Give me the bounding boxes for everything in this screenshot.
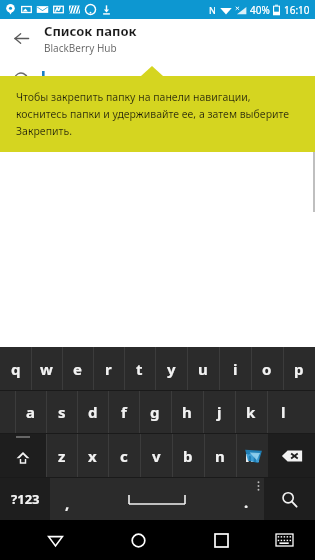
button[interactable]: c	[108, 434, 140, 477]
staticText: N	[209, 4, 216, 16]
button[interactable]: b	[172, 434, 204, 477]
button[interactable]: ,	[50, 478, 85, 520]
button[interactable]: m	[236, 434, 268, 477]
staticText: ?123	[11, 490, 40, 508]
staticText: q	[11, 359, 21, 379]
button[interactable]: f	[108, 391, 139, 433]
button[interactable]: w	[31, 347, 62, 390]
button[interactable]: p	[283, 347, 315, 390]
button[interactable]: k	[235, 391, 267, 433]
button[interactable]: q	[0, 347, 31, 390]
staticText: w	[40, 359, 53, 379]
staticText: i	[233, 359, 238, 379]
staticText: v	[152, 446, 161, 466]
button[interactable]: Switch keyboard	[267, 523, 301, 557]
staticText: n	[215, 446, 225, 466]
button[interactable]: s	[46, 391, 77, 433]
button[interactable]: h	[171, 391, 203, 433]
staticText: m	[245, 446, 260, 466]
button[interactable]: j	[203, 391, 235, 433]
staticText: y	[167, 359, 176, 379]
staticText: 16:10	[284, 3, 310, 17]
staticText: .	[244, 492, 249, 512]
button[interactable]	[0, 57, 315, 83]
button[interactable]: Space	[85, 478, 229, 520]
staticText: p	[294, 359, 304, 379]
button[interactable]: l	[267, 391, 299, 433]
button[interactable]: Search	[264, 478, 315, 520]
staticText: h	[182, 402, 192, 422]
staticText: t	[136, 359, 143, 379]
button[interactable]: z	[46, 434, 77, 477]
button[interactable]: x	[77, 434, 108, 477]
button[interactable]: g	[139, 391, 171, 433]
button[interactable]: d	[77, 391, 108, 433]
staticText: e	[73, 359, 82, 379]
staticText: BlackBerry Hub	[44, 41, 117, 55]
button[interactable]: Back	[6, 23, 36, 53]
button[interactable]: Recent apps	[201, 520, 241, 560]
button[interactable]: a	[15, 391, 46, 433]
staticText: b	[183, 446, 193, 466]
button[interactable]: Чтобы закрепить папку на панели навигаци…	[0, 76, 315, 152]
button[interactable]: y	[155, 347, 187, 390]
button[interactable]: i	[219, 347, 251, 390]
button[interactable]: r	[93, 347, 124, 390]
button[interactable]: .	[229, 478, 264, 520]
staticText: g	[150, 402, 160, 422]
button[interactable]: Home	[118, 520, 158, 560]
staticText: ,	[65, 493, 70, 513]
staticText: d	[88, 402, 98, 422]
button[interactable]: n	[204, 434, 236, 477]
staticText: f	[121, 402, 127, 422]
button[interactable]: Back	[35, 520, 75, 560]
staticText: z	[58, 446, 66, 466]
staticText: a	[26, 402, 35, 422]
staticText: c	[120, 446, 128, 466]
button[interactable]: u	[187, 347, 219, 390]
button[interactable]: v	[140, 434, 172, 477]
staticText: o	[262, 359, 272, 379]
button[interactable]: e	[62, 347, 93, 390]
button[interactable]: Shift	[0, 434, 46, 477]
staticText: Список папок	[44, 22, 137, 40]
staticText: j	[217, 402, 222, 422]
staticText: Чтобы закрепить папку на панели навигаци…	[16, 90, 301, 138]
staticText: k	[246, 402, 256, 422]
staticText: 40%	[250, 3, 270, 17]
staticText: u	[198, 359, 208, 379]
button[interactable]: ?123	[0, 478, 50, 520]
button[interactable]: t	[124, 347, 155, 390]
staticText: r	[105, 359, 112, 379]
button[interactable]: o	[251, 347, 283, 390]
staticText: l	[281, 402, 286, 422]
staticText: x	[88, 446, 97, 466]
staticText: s	[58, 402, 66, 422]
button[interactable]: Backspace	[268, 434, 315, 477]
